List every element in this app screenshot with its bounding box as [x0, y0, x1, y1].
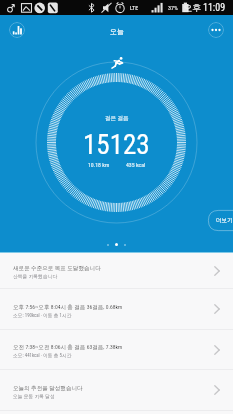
- staticText: 오늘: [110, 27, 124, 36]
- button[interactable]: 오늘의 추천을 달성했습니다: [0, 370, 233, 410]
- button[interactable]: 오전 7:38~오전 8:06시 총 걸음 63걸음, 7.38km: [0, 330, 233, 369]
- button[interactable]: 오후 7:56~오후 8:04시 총 걸음 36걸음, 0.68km: [0, 289, 233, 329]
- staticText: 걸은 걸음: [105, 115, 129, 122]
- staticText: 오늘의 추천을 달성했습니다: [13, 385, 83, 392]
- staticText: 소모: 441kcal · 이동 총 5시간: [13, 352, 72, 358]
- staticText: 산책을 기록했습니다: [13, 273, 58, 279]
- button[interactable]: Statistics: [9, 22, 25, 38]
- staticText: 오늘 운동 기록 달성: [13, 393, 55, 399]
- staticText: 소모: 190kcal · 이동 총 1시간: [13, 312, 72, 318]
- button[interactable]: More options: [208, 22, 224, 38]
- staticText: 새로운 수준으로 목표 도달했습니다: [13, 265, 101, 272]
- staticText: 37%: [168, 4, 178, 11]
- staticText: 11:09: [203, 2, 226, 14]
- staticText: 오후 7:56~오후 8:04시 총 걸음 36걸음, 0.68km: [13, 304, 123, 311]
- button[interactable]: 더보기: [208, 210, 233, 231]
- staticText: 더보기: [216, 217, 233, 224]
- staticText: LTE: [130, 4, 139, 11]
- staticText: 10.18 km: [88, 162, 110, 169]
- staticText: 15123: [83, 129, 150, 161]
- staticText: 오후: [183, 2, 201, 13]
- button[interactable]: 새로운 수준으로 목표 도달했습니다: [0, 253, 233, 288]
- staticText: 435 kcal: [126, 162, 146, 169]
- staticText: 오전 7:38~오전 8:06시 총 걸음 63걸음, 7.38km: [13, 344, 123, 351]
